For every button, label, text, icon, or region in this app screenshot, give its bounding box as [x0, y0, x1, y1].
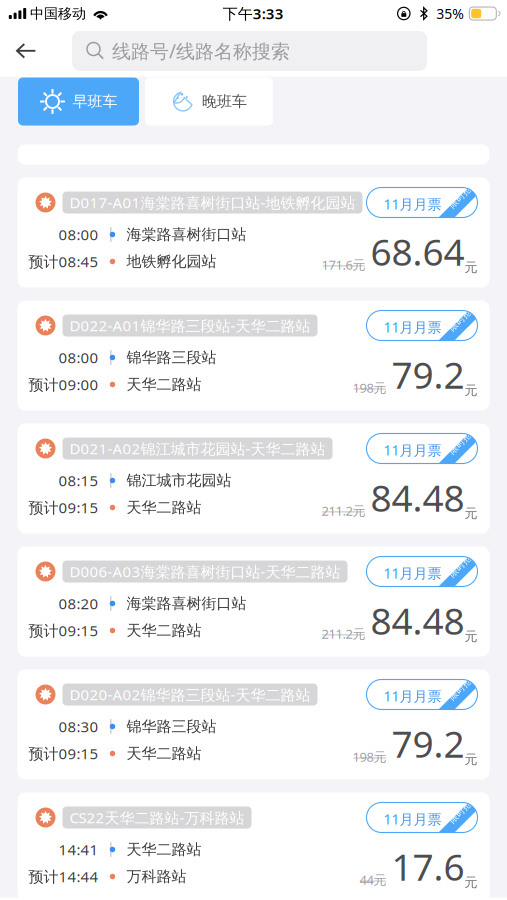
staticText: D006-A03海棠路喜树街口站-天华二路站	[69, 561, 340, 582]
staticText: 08:20	[58, 593, 98, 614]
staticText: 元	[464, 874, 477, 890]
staticText: D020-A02锦华路三段站-天华二路站	[69, 684, 310, 705]
staticText: D022-A01锦华路三段站-天华二路站	[69, 315, 310, 336]
staticText: 预计09:15	[28, 620, 98, 641]
staticText: 万科路站	[126, 867, 186, 886]
staticText: 预计09:00	[28, 374, 98, 395]
staticText: 海棠路喜树街口站	[126, 594, 246, 613]
staticText: 锦江城市花园站	[126, 471, 231, 490]
staticText: 14:41	[58, 839, 98, 860]
button[interactable]: D017-A01海棠路喜树街口站-地铁孵化园站	[17, 177, 489, 287]
button[interactable]: 线路号/线路名称搜索	[52, 31, 427, 71]
button[interactable]: D020-A02锦华路三段站-天华二路站	[17, 669, 489, 779]
staticText: 68.64	[370, 226, 464, 276]
staticText: 元	[464, 628, 477, 644]
staticText: 海棠路喜树街口站	[126, 225, 246, 244]
staticText: D017-A01海棠路喜树街口站-地铁孵化园站	[69, 192, 355, 213]
staticText: 限时抢	[446, 437, 473, 449]
staticText: 44元	[359, 871, 386, 888]
staticText: 79.2	[391, 718, 464, 768]
staticText: 11月月票	[383, 440, 441, 460]
staticText: 元	[464, 259, 477, 275]
staticText: 天华二路站	[126, 840, 201, 859]
staticText: 预计09:15	[28, 497, 98, 518]
staticText: 08:30	[58, 716, 98, 737]
staticText: 11月月票	[383, 194, 441, 214]
staticText: 天华二路站	[126, 375, 201, 394]
staticText: 211.2元	[321, 625, 365, 642]
staticText: 线路号/线路名称搜索	[112, 38, 290, 64]
staticText: 预计09:15	[28, 743, 98, 764]
staticText: 限时抢	[446, 314, 473, 326]
staticText: 下午3:33	[223, 3, 284, 24]
staticText: 11月月票	[383, 809, 441, 829]
staticText: D021-A02锦江城市花园站-天华二路站	[69, 438, 325, 459]
staticText: 元	[464, 382, 477, 398]
staticText: 11月月票	[383, 563, 441, 583]
staticText: 天华二路站	[126, 621, 201, 640]
staticText: CS22天华二路站-万科路站	[69, 807, 244, 828]
staticText: 限时抢	[446, 560, 473, 572]
staticText: 锦华路三段站	[126, 348, 216, 367]
staticText: 84.48	[370, 472, 464, 522]
staticText: 天华二路站	[126, 744, 201, 763]
staticText: 08:00	[58, 224, 98, 245]
staticText: 预计14:44	[28, 866, 98, 887]
button[interactable]: 晚班车	[145, 77, 273, 125]
staticText: 84.48	[370, 595, 464, 645]
staticText: 锦华路三段站	[126, 717, 216, 736]
staticText: 元	[464, 505, 477, 521]
staticText: 地铁孵化园站	[126, 252, 216, 271]
button[interactable]: 早班车	[18, 77, 139, 125]
staticText: 限时抢	[446, 806, 473, 818]
staticText: 35%	[436, 4, 464, 23]
button[interactable]: D006-A03海棠路喜树街口站-天华二路站	[17, 546, 489, 656]
staticText: 元	[464, 751, 477, 767]
staticText: 171.6元	[321, 256, 365, 273]
staticText: 08:00	[58, 347, 98, 368]
staticText: 198元	[352, 748, 386, 765]
staticText: 08:15	[58, 470, 98, 491]
staticText: 中国移动	[30, 5, 86, 22]
staticText: 早班车	[72, 92, 117, 111]
staticText: 天华二路站	[126, 498, 201, 517]
staticText: 79.2	[391, 349, 464, 399]
staticText: 限时抢	[446, 191, 473, 203]
staticText: 限时抢	[446, 683, 473, 695]
button[interactable]: CS22天华二路站-万科路站	[17, 792, 489, 900]
staticText: 预计08:45	[28, 251, 98, 272]
staticText: 17.6	[391, 841, 464, 891]
staticText: 198元	[352, 379, 386, 396]
staticText: 11月月票	[383, 317, 441, 337]
button[interactable]: Back	[0, 25, 52, 76]
button[interactable]: D022-A01锦华路三段站-天华二路站	[17, 300, 489, 410]
button[interactable]: D021-A02锦江城市花园站-天华二路站	[17, 423, 489, 533]
staticText: 211.2元	[321, 502, 365, 519]
staticText: 11月月票	[383, 686, 441, 706]
staticText: 晚班车	[202, 92, 247, 111]
